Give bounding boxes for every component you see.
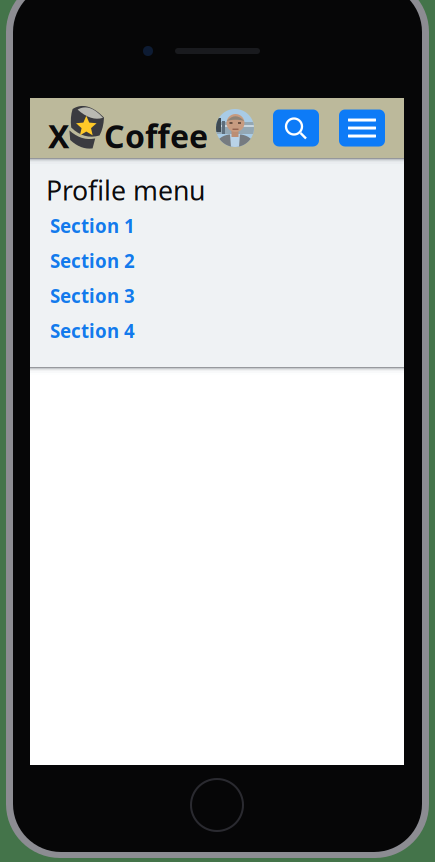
button[interactable]: X (30, 98, 230, 158)
staticText: Profile menu (46, 172, 205, 208)
button[interactable]: Section 1 (30, 208, 404, 243)
staticText: Section 4 (50, 318, 135, 343)
button[interactable]: Open menu (339, 109, 385, 146)
staticText: Coffee (104, 114, 208, 158)
staticText: Section 2 (50, 248, 135, 273)
button[interactable]: Section 4 (30, 313, 404, 348)
button[interactable]: Section 3 (30, 278, 404, 313)
staticText: X (48, 114, 69, 158)
button[interactable]: Section 2 (30, 243, 404, 278)
staticText: Section 3 (50, 283, 135, 308)
staticText: Section 1 (50, 213, 135, 238)
button[interactable]: Search (273, 109, 319, 146)
button[interactable]: Account (216, 109, 254, 147)
